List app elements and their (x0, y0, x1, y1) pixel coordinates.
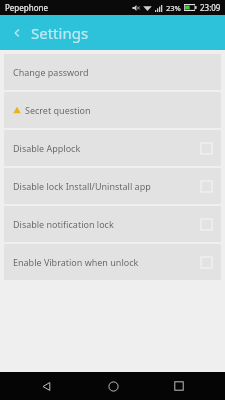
staticText: 23% (166, 3, 181, 13)
staticText: Secret question (25, 104, 212, 116)
button[interactable]: Home (93, 372, 133, 400)
button[interactable]: Disable notification lock (4, 206, 221, 242)
staticText: Disable Applock (13, 142, 201, 154)
staticText: Disable notification lock (13, 218, 201, 230)
staticText: Settings (31, 23, 89, 43)
button[interactable]: Secret question (4, 92, 221, 128)
button[interactable]: Enable Vibration when unlock (4, 244, 221, 280)
button[interactable]: Back (6, 22, 28, 44)
staticText: Change password (13, 66, 212, 78)
staticText: 23:09 (200, 2, 221, 13)
staticText: Enable Vibration when unlock (13, 256, 201, 268)
button[interactable]: Disable Applock (4, 130, 221, 166)
staticText: Pepephone (5, 2, 48, 13)
button[interactable]: Back (26, 372, 66, 400)
button[interactable]: Change password (4, 54, 221, 90)
staticText: Disable lock Install/Uninstall app (13, 180, 201, 192)
button[interactable]: Recents (159, 372, 199, 400)
button[interactable]: Disable lock Install/Uninstall app (4, 168, 221, 204)
